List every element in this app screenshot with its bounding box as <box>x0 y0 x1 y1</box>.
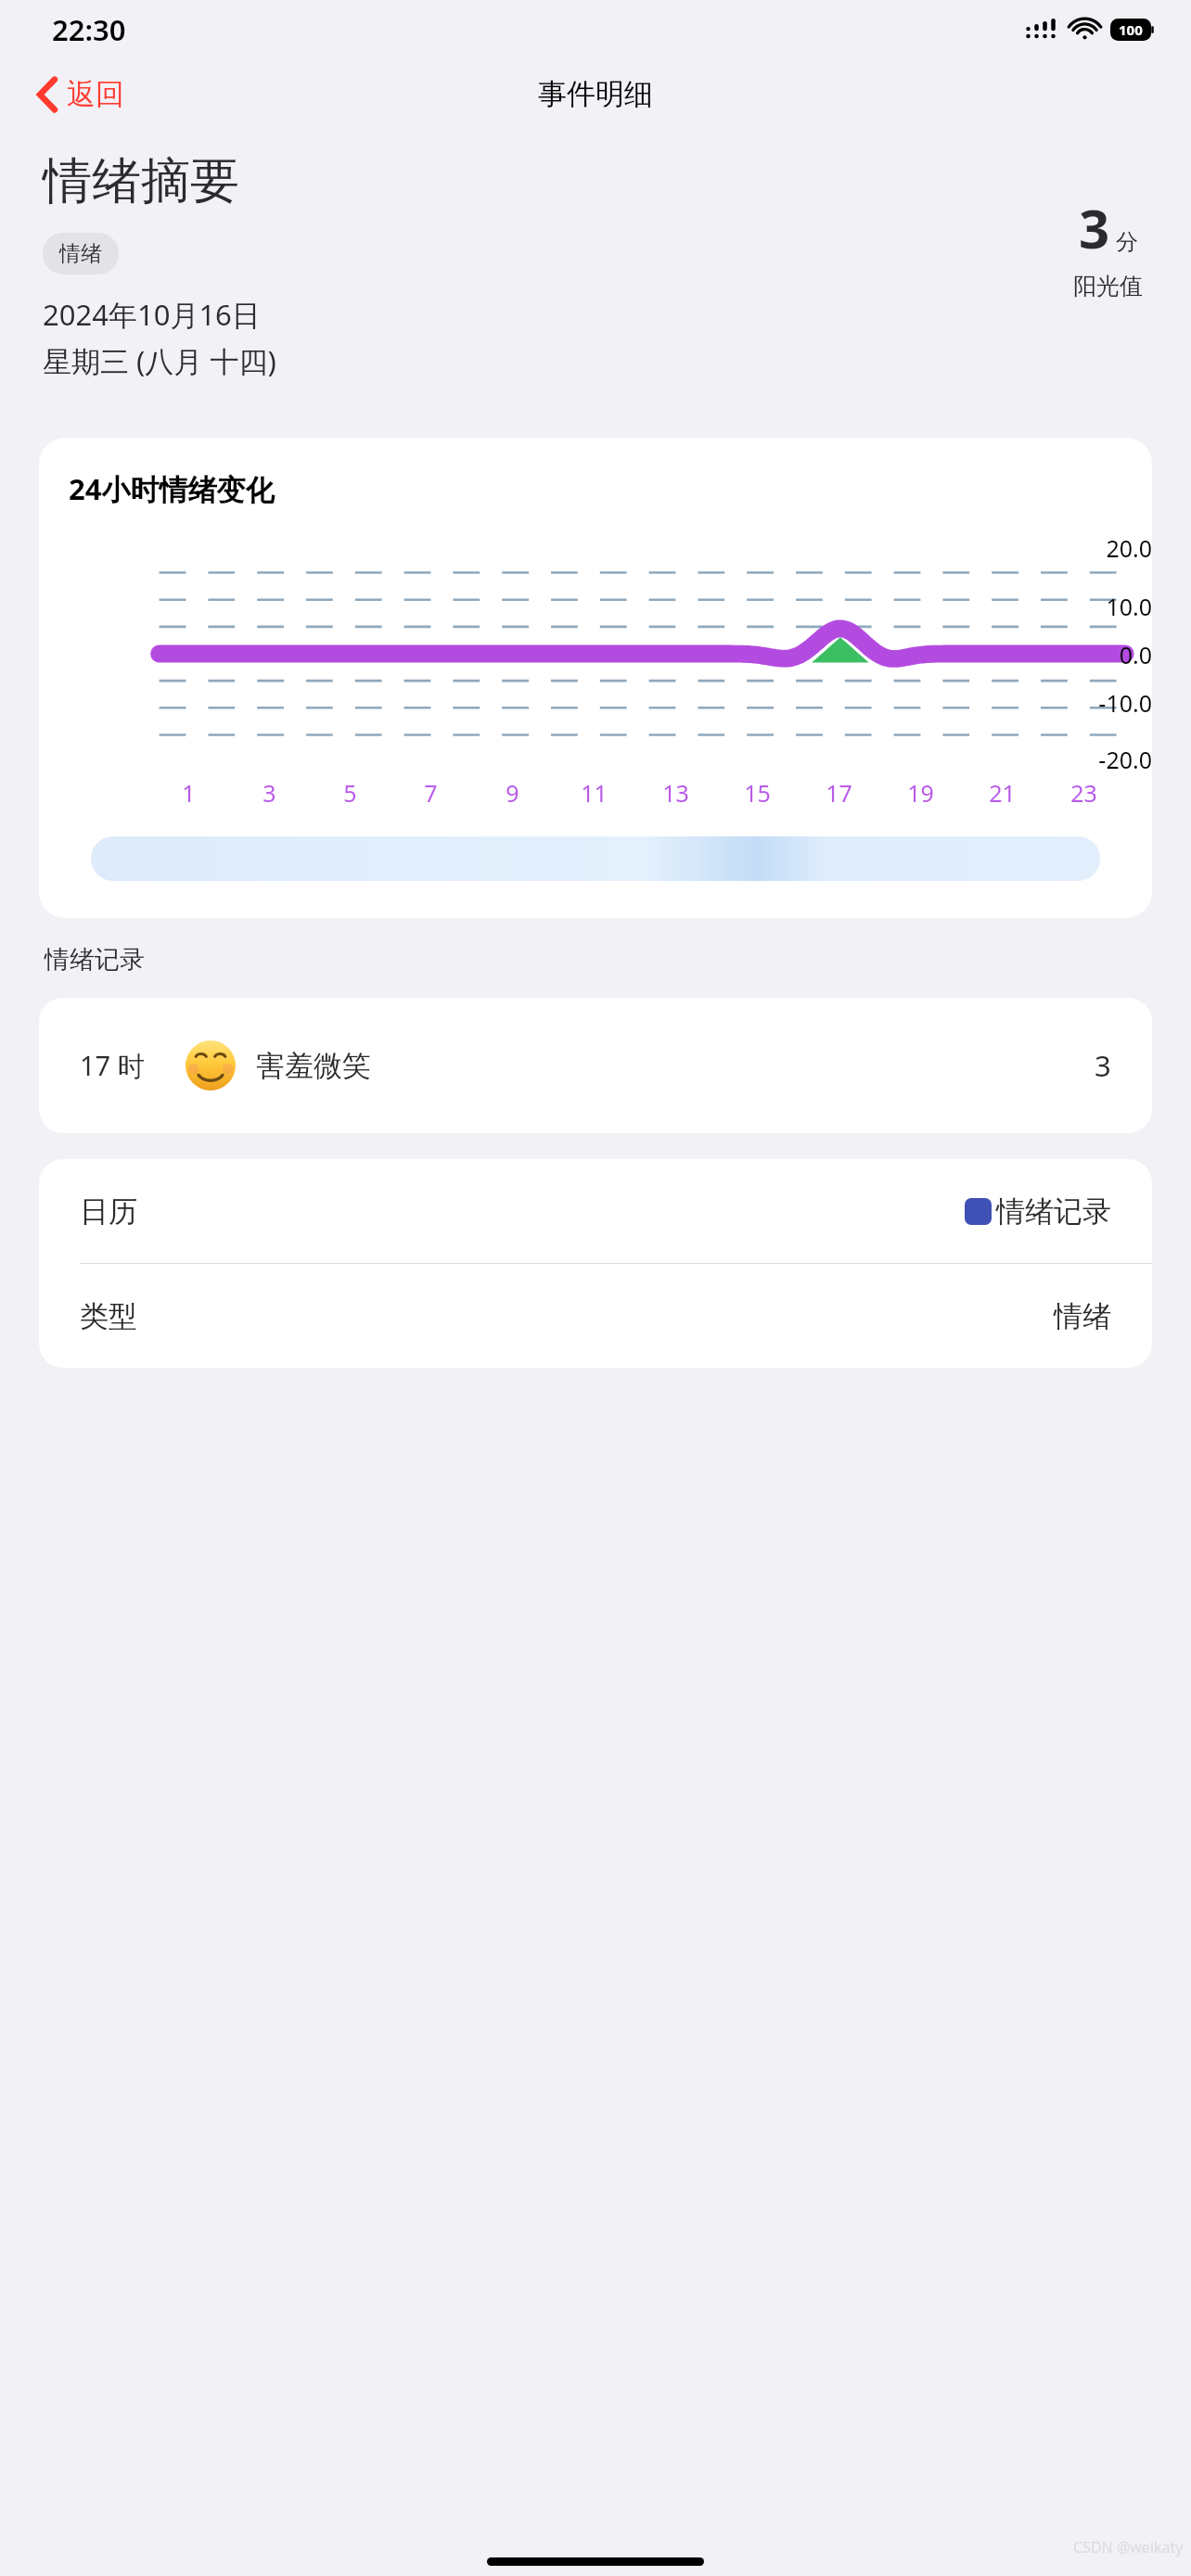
staticText: 11 <box>581 777 608 809</box>
staticText: 24小时情绪变化 <box>69 469 275 508</box>
staticText: 返回 <box>67 76 124 112</box>
button[interactable]: 24小时情绪变化 <box>39 438 1152 918</box>
staticText: 17 时 <box>80 1047 145 1084</box>
staticText: 阳光值 <box>1073 272 1143 300</box>
staticText: 事件明细 <box>538 76 653 112</box>
staticText: 5 <box>343 777 357 809</box>
staticText: 情绪摘要 <box>43 150 239 212</box>
staticText: 2024年10月16日 <box>43 295 261 334</box>
staticText: 21 <box>989 777 1016 809</box>
staticText: 星期三 (八月 十四) <box>43 341 276 380</box>
button[interactable] <box>91 836 1100 881</box>
staticText: 17 <box>826 777 852 809</box>
staticText: 7 <box>424 777 438 809</box>
button[interactable]: 类型 <box>39 1264 1152 1368</box>
staticText: 情绪记录 <box>45 944 145 976</box>
staticText: 情绪 <box>1054 1298 1111 1334</box>
staticText: 3 <box>1079 191 1110 264</box>
staticText: 23 <box>1070 777 1097 809</box>
staticText: 10.0 <box>1054 591 1152 622</box>
staticText: 13 <box>662 777 689 809</box>
staticText: 情绪 <box>59 240 102 267</box>
staticText: -20.0 <box>1054 744 1152 775</box>
staticText: 22:30 <box>52 10 126 49</box>
other: 返回 <box>37 77 58 112</box>
staticText: 15 <box>744 777 771 809</box>
staticText: 3 <box>1095 1046 1111 1085</box>
staticText: 0.0 <box>1054 639 1152 670</box>
button[interactable]: 返回 <box>30 70 132 118</box>
button[interactable]: 情绪 <box>43 233 119 274</box>
staticText: 3 <box>263 777 276 809</box>
button[interactable]: 日历 <box>39 1159 1152 1263</box>
staticText: 9 <box>506 777 519 809</box>
staticText: CSDN @weikaty <box>1073 2537 1184 2557</box>
staticText: 情绪记录 <box>996 1193 1111 1230</box>
staticText: 100 <box>1119 20 1143 39</box>
button[interactable]: 17 时 <box>39 998 1152 1133</box>
staticText: 19 <box>907 777 934 809</box>
staticText: 害羞微笑 <box>256 1048 371 1084</box>
staticText: 1 <box>182 777 196 809</box>
staticText: 20.0 <box>1054 532 1152 564</box>
staticText: 类型 <box>80 1298 137 1334</box>
staticText: 日历 <box>80 1193 137 1230</box>
staticText: -10.0 <box>1054 687 1152 719</box>
staticText: 分 <box>1116 228 1138 256</box>
